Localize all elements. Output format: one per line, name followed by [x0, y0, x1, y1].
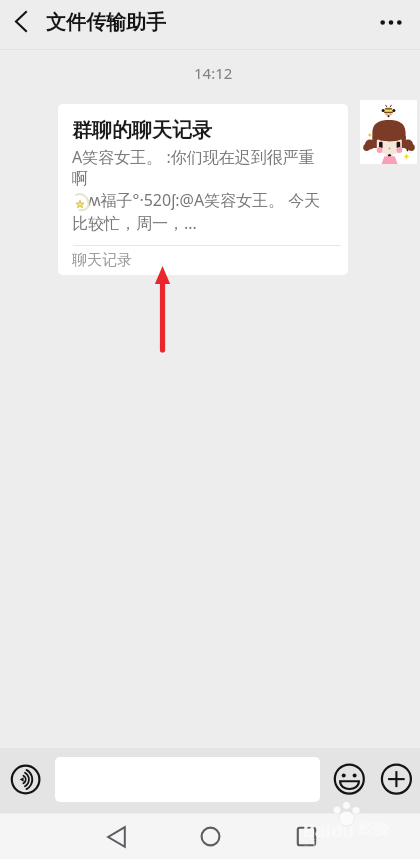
staticText: ʍ福子°·520ʃ:@A笑容女王。 今天 比较忙，周一，...: [72, 189, 340, 234]
button[interactable]: Voice message: [6, 760, 46, 800]
button[interactable]: Back: [1, 1, 41, 41]
button[interactable]: Back: [97, 817, 136, 856]
staticText: 聊天记录: [72, 251, 132, 270]
button[interactable]: Emoji: [330, 759, 370, 799]
staticText: Baidu: [303, 818, 355, 843]
staticText: jingyan.baidu.com: [313, 836, 391, 848]
staticText: 文件传输助手: [46, 10, 166, 35]
button[interactable]: More options: [371, 4, 411, 44]
button[interactable]: Avatar: [360, 100, 417, 164]
button[interactable]: Recent apps: [287, 817, 326, 856]
staticText: 14:12: [194, 63, 233, 83]
staticText: A笑容女王。 :你们现在迟到很严重 啊: [72, 146, 340, 188]
button[interactable]: More functions: [377, 759, 417, 799]
button[interactable]: Home: [191, 817, 230, 856]
staticText: 群聊的聊天记录: [72, 118, 212, 143]
button[interactable]: 群聊的聊天记录: [58, 104, 348, 275]
